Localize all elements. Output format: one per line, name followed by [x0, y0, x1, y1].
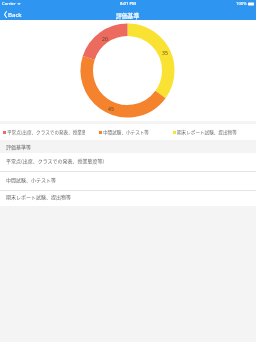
staticText: 評価基準	[116, 11, 140, 19]
button[interactable]: Back	[0, 8, 26, 20]
staticText: 中間試験、小テスト等	[103, 129, 149, 136]
staticText: 100%	[236, 1, 247, 7]
staticText: Carrier	[2, 1, 16, 7]
button[interactable]: 中間試験、小テスト等	[0, 172, 256, 190]
button[interactable]: 平常点(出席、クラスでの発表、授業態度等)	[3, 124, 85, 140]
button[interactable]: 平常点(出席、クラスでの発表、授業態度等)	[0, 153, 256, 171]
button[interactable]: 期末レポート試験、提出物等	[173, 124, 253, 140]
staticText: 期末レポート試験、提出物等	[6, 193, 72, 200]
button[interactable]: 中間試験、小テスト等	[99, 124, 169, 140]
staticText: 評価基準等	[6, 143, 32, 150]
button[interactable]: 期末レポート試験、提出物等	[0, 191, 256, 206]
staticText: 平常点(出席、クラスでの発表、授業態度等)	[7, 129, 85, 136]
staticText: 期末レポート試験、提出物等	[177, 129, 237, 136]
staticText: 中間試験、小テスト等	[6, 176, 57, 183]
staticText: Back	[8, 10, 22, 18]
staticText: 8:01 PM	[120, 1, 136, 7]
staticText: 平常点(出席、クラスでの発表、授業態度等)	[6, 157, 105, 164]
